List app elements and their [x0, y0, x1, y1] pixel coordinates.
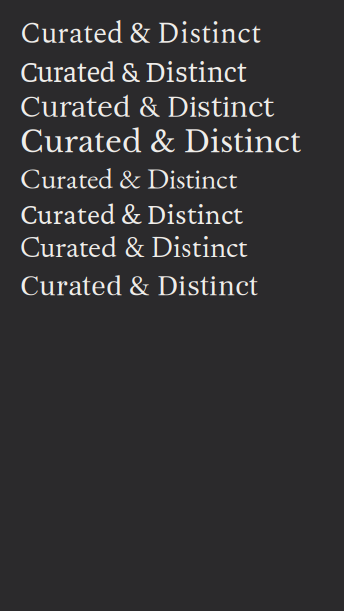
staticText: Curated & Distinct [20, 198, 243, 230]
staticText: Curated & Distinct [20, 159, 237, 197]
staticText: Curated & Distinct [20, 267, 258, 305]
staticText: Curated & Distinct [20, 12, 261, 56]
staticText: Curated & Distinct [20, 235, 248, 265]
staticText: Curated & Distinct [20, 124, 301, 160]
staticText: Curated & Distinct [20, 51, 247, 88]
staticText: Curated & Distinct [20, 87, 274, 125]
